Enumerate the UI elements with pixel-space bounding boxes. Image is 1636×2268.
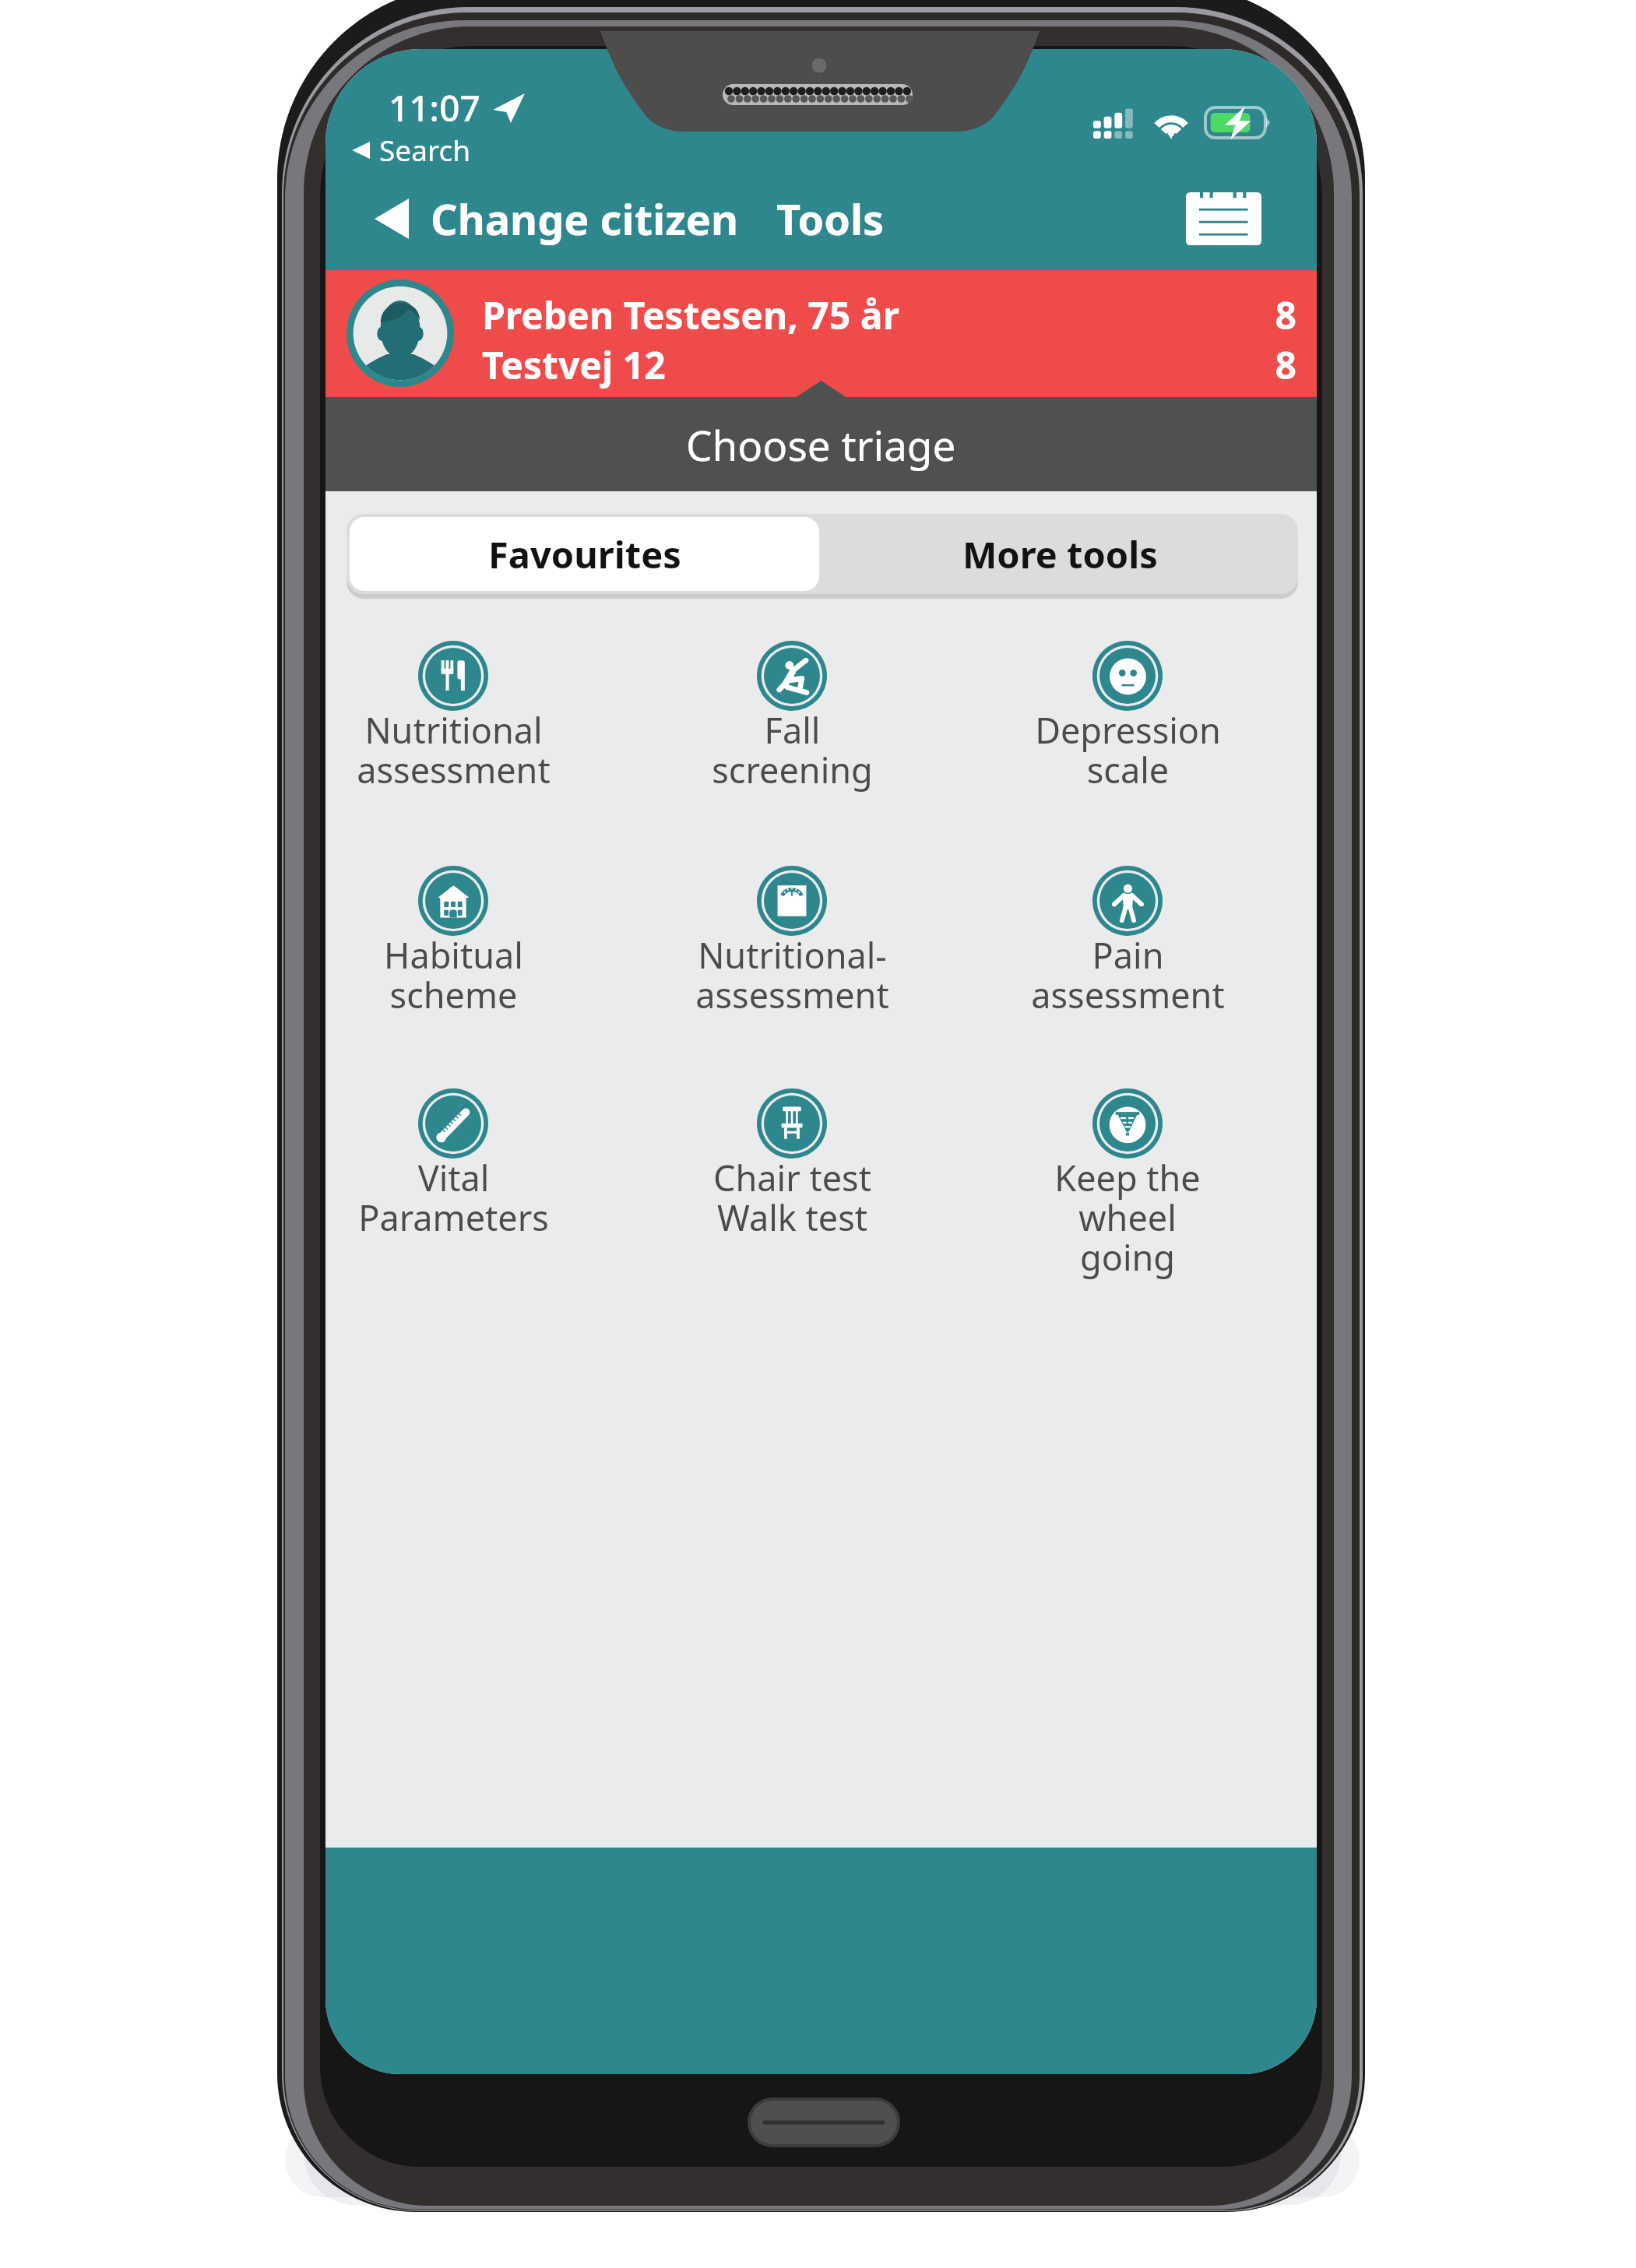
staticText: Habitual scheme <box>384 931 523 1018</box>
button[interactable]: Keep the wheel going <box>960 1082 1295 1289</box>
button[interactable]: Habitual scheme <box>325 860 621 1067</box>
button[interactable]: Choose triage <box>325 397 1317 491</box>
button[interactable]: Depression scale <box>960 635 1295 842</box>
staticText: Change citizen <box>431 190 739 248</box>
button[interactable]: Fall screening <box>624 635 959 842</box>
button[interactable]: Bottom bar <box>325 1848 1317 2074</box>
staticText: Favourites <box>488 529 681 579</box>
button[interactable]: Search <box>344 123 482 176</box>
staticText: Search <box>379 130 471 169</box>
staticText: 8 8 <box>1275 290 1296 390</box>
staticText: Depression scale <box>1035 706 1221 793</box>
staticText: 11:07 <box>389 83 480 132</box>
button[interactable]: Notes <box>1169 178 1279 259</box>
staticText: Choose triage <box>686 417 956 473</box>
staticText: More tools <box>962 529 1158 579</box>
button[interactable]: Nutritional assessment <box>325 635 621 842</box>
button[interactable]: Chair test Walk test <box>624 1082 959 1289</box>
button[interactable]: Tools <box>758 178 903 259</box>
button[interactable]: Change citizen <box>357 178 751 259</box>
button[interactable]: Vital Parameters <box>325 1082 621 1289</box>
staticText: Fall screening <box>712 706 873 793</box>
staticText: Tools <box>776 190 885 248</box>
button[interactable]: Nutritional- assessment <box>624 860 959 1067</box>
staticText: Nutritional- assessment <box>695 931 889 1018</box>
button[interactable]: More tools <box>822 514 1298 594</box>
staticText: Chair test Walk test <box>713 1154 871 1241</box>
button[interactable]: Favourites <box>350 517 819 591</box>
staticText: Preben Testesen, 75 år Testvej 12 <box>482 290 899 390</box>
button[interactable]: Pain assessment <box>960 860 1295 1067</box>
staticText: Keep the wheel going <box>1054 1154 1201 1281</box>
staticText: Pain assessment <box>1031 931 1225 1018</box>
button[interactable]: Preben Testesen, 75 år Testvej 12 <box>325 270 1317 397</box>
staticText: Vital Parameters <box>358 1154 549 1241</box>
staticText: Nutritional assessment <box>357 706 551 793</box>
